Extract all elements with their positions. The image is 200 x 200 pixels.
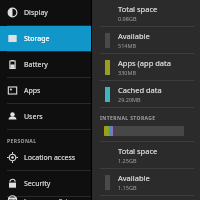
- button[interactable]: Available: [92, 27, 200, 53]
- button[interactable]: Cached data: [92, 81, 200, 107]
- button[interactable]: Language & inpu: [0, 197, 91, 200]
- staticText: INTERNAL STORAGE: [100, 115, 156, 122]
- staticText: 330MB: [118, 69, 137, 76]
- staticText: PERSONAL: [7, 138, 37, 145]
- staticText: Battery: [24, 60, 48, 70]
- staticText: Available: [118, 173, 150, 183]
- button[interactable]: Available: [92, 169, 200, 195]
- button[interactable]: Total space: [92, 142, 200, 168]
- button[interactable]: Location access: [0, 145, 91, 170]
- staticText: Available: [118, 31, 150, 41]
- staticText: Location access: [24, 153, 76, 163]
- button[interactable]: Security: [0, 171, 91, 196]
- staticText: Language & inpu: [24, 197, 81, 200]
- button[interactable]: Apps: [0, 78, 91, 103]
- staticText: 1.15GB: [118, 184, 137, 191]
- staticText: 1.25GB: [118, 157, 137, 164]
- staticText: Cached data: [118, 85, 162, 95]
- button[interactable]: Total space: [92, 0, 200, 26]
- staticText: Security: [24, 179, 51, 189]
- button[interactable]: Display: [0, 0, 91, 25]
- staticText: Storage: [24, 34, 50, 44]
- staticText: 0.98GB: [118, 15, 137, 22]
- staticText: Total space: [118, 4, 158, 14]
- staticText: Display: [24, 8, 48, 18]
- button[interactable]: Users: [0, 104, 91, 129]
- staticText: Users: [24, 112, 43, 122]
- staticText: Apps (app data: [118, 58, 173, 68]
- staticText: 514MB: [118, 42, 137, 49]
- button[interactable]: Battery: [0, 52, 91, 77]
- staticText: 29.20MB: [118, 96, 141, 103]
- button[interactable]: Storage: [0, 26, 91, 51]
- staticText: Apps: [24, 86, 41, 96]
- button[interactable]: Apps (app data: [92, 54, 200, 80]
- staticText: Total space: [118, 146, 158, 156]
